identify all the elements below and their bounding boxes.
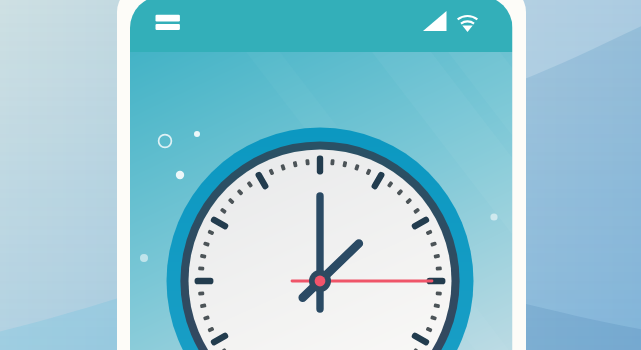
- button[interactable]: Wi-Fi: [452, 4, 486, 44]
- button[interactable]: Open navigation drawer: [142, 4, 194, 48]
- button[interactable]: Mobile signal: [414, 4, 456, 44]
- button[interactable]: Analog clock, 1:00: [166, 127, 474, 350]
